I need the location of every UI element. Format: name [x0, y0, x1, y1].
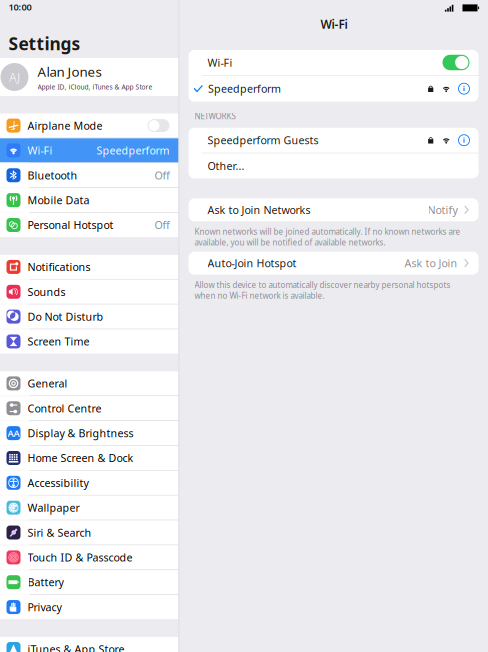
button[interactable]: General — [0, 371, 178, 395]
staticText: Wi-Fi — [207, 55, 232, 70]
staticText: Ask to Join — [404, 256, 457, 270]
button[interactable]: Screen Time — [0, 329, 178, 353]
staticText: Known networks will be joined automatica… — [194, 226, 460, 248]
staticText: Control Centre — [27, 401, 101, 415]
button[interactable]: Privacy — [0, 595, 178, 619]
staticText: Ask to Join Networks — [207, 203, 310, 217]
staticText: Auto-Join Hotspot — [207, 256, 296, 270]
staticText: Screen Time — [27, 334, 89, 349]
staticText: AJ — [9, 69, 20, 85]
button[interactable]: iTunes & App Store — [0, 637, 178, 652]
staticText: Touch ID & Passcode — [27, 550, 132, 564]
staticText: Mobile Data — [27, 193, 89, 207]
staticText: Allow this device to automatically disco… — [194, 280, 450, 301]
button[interactable]: Accessibility — [0, 471, 178, 495]
button[interactable]: Airplane Mode — [0, 113, 178, 138]
button[interactable]: Personal Hotspot — [0, 213, 178, 237]
button[interactable]: Bluetooth — [0, 163, 178, 187]
button[interactable]: Notifications — [0, 255, 178, 279]
staticText: Display & Brightness — [27, 426, 133, 440]
staticText: Siri & Search — [27, 525, 91, 540]
staticText: 10:00 — [8, 1, 31, 13]
button[interactable]: Wi-Fi — [188, 50, 478, 75]
button[interactable]: Do Not Disturb — [0, 305, 178, 329]
button[interactable]: Siri & Search — [0, 520, 178, 544]
staticText: Wi-Fi — [27, 143, 52, 157]
staticText: AA — [7, 427, 19, 439]
button[interactable]: AA — [0, 421, 178, 445]
staticText: Apple ID, iCloud, iTunes & App Store — [37, 82, 152, 91]
staticText: Speedperform — [96, 143, 169, 157]
button[interactable]: Speedperform — [188, 76, 478, 102]
staticText: iTunes & App Store — [27, 642, 124, 652]
staticText: Home Screen & Dock — [27, 451, 133, 465]
button[interactable]: Touch ID & Passcode — [0, 545, 178, 569]
button[interactable]: Wi-Fi — [0, 138, 178, 162]
button[interactable]: Wallpaper — [0, 496, 178, 520]
staticText: Privacy — [27, 600, 61, 614]
staticText: Sounds — [27, 285, 65, 299]
staticText: Speedperform Guests — [207, 133, 318, 147]
button[interactable]: Mobile Data — [0, 188, 178, 212]
staticText: NETWORKS — [194, 111, 235, 121]
staticText: Wi-Fi — [320, 16, 347, 32]
staticText: Battery — [27, 575, 63, 589]
button[interactable]: Speedperform Guests — [188, 128, 478, 153]
staticText: Notify — [427, 203, 457, 217]
button[interactable]: Auto-Join Hotspot — [188, 252, 478, 275]
staticText: Airplane Mode — [27, 118, 102, 133]
staticText: Personal Hotspot — [27, 218, 113, 232]
staticText: Do Not Disturb — [27, 309, 103, 324]
staticText: General — [27, 376, 67, 390]
staticText: Other... — [207, 159, 244, 173]
staticText: Accessibility — [27, 476, 88, 490]
button[interactable]: AJ — [0, 58, 178, 96]
button[interactable]: Sounds — [0, 280, 178, 304]
button[interactable]: Battery — [0, 570, 178, 594]
staticText: Off — [154, 218, 169, 232]
button[interactable]: Ask to Join Networks — [188, 198, 478, 221]
staticText: Wallpaper — [27, 501, 79, 515]
staticText: Speedperform — [208, 82, 281, 96]
button[interactable]: Control Centre — [0, 396, 178, 420]
staticText: Bluetooth — [27, 168, 77, 182]
staticText: Alan Jones — [37, 63, 101, 80]
staticText: Notifications — [27, 260, 90, 274]
staticText: Settings — [8, 32, 80, 55]
button[interactable]: Home Screen & Dock — [0, 446, 178, 470]
staticText: Off — [154, 168, 169, 182]
button[interactable]: Other... — [188, 153, 478, 178]
